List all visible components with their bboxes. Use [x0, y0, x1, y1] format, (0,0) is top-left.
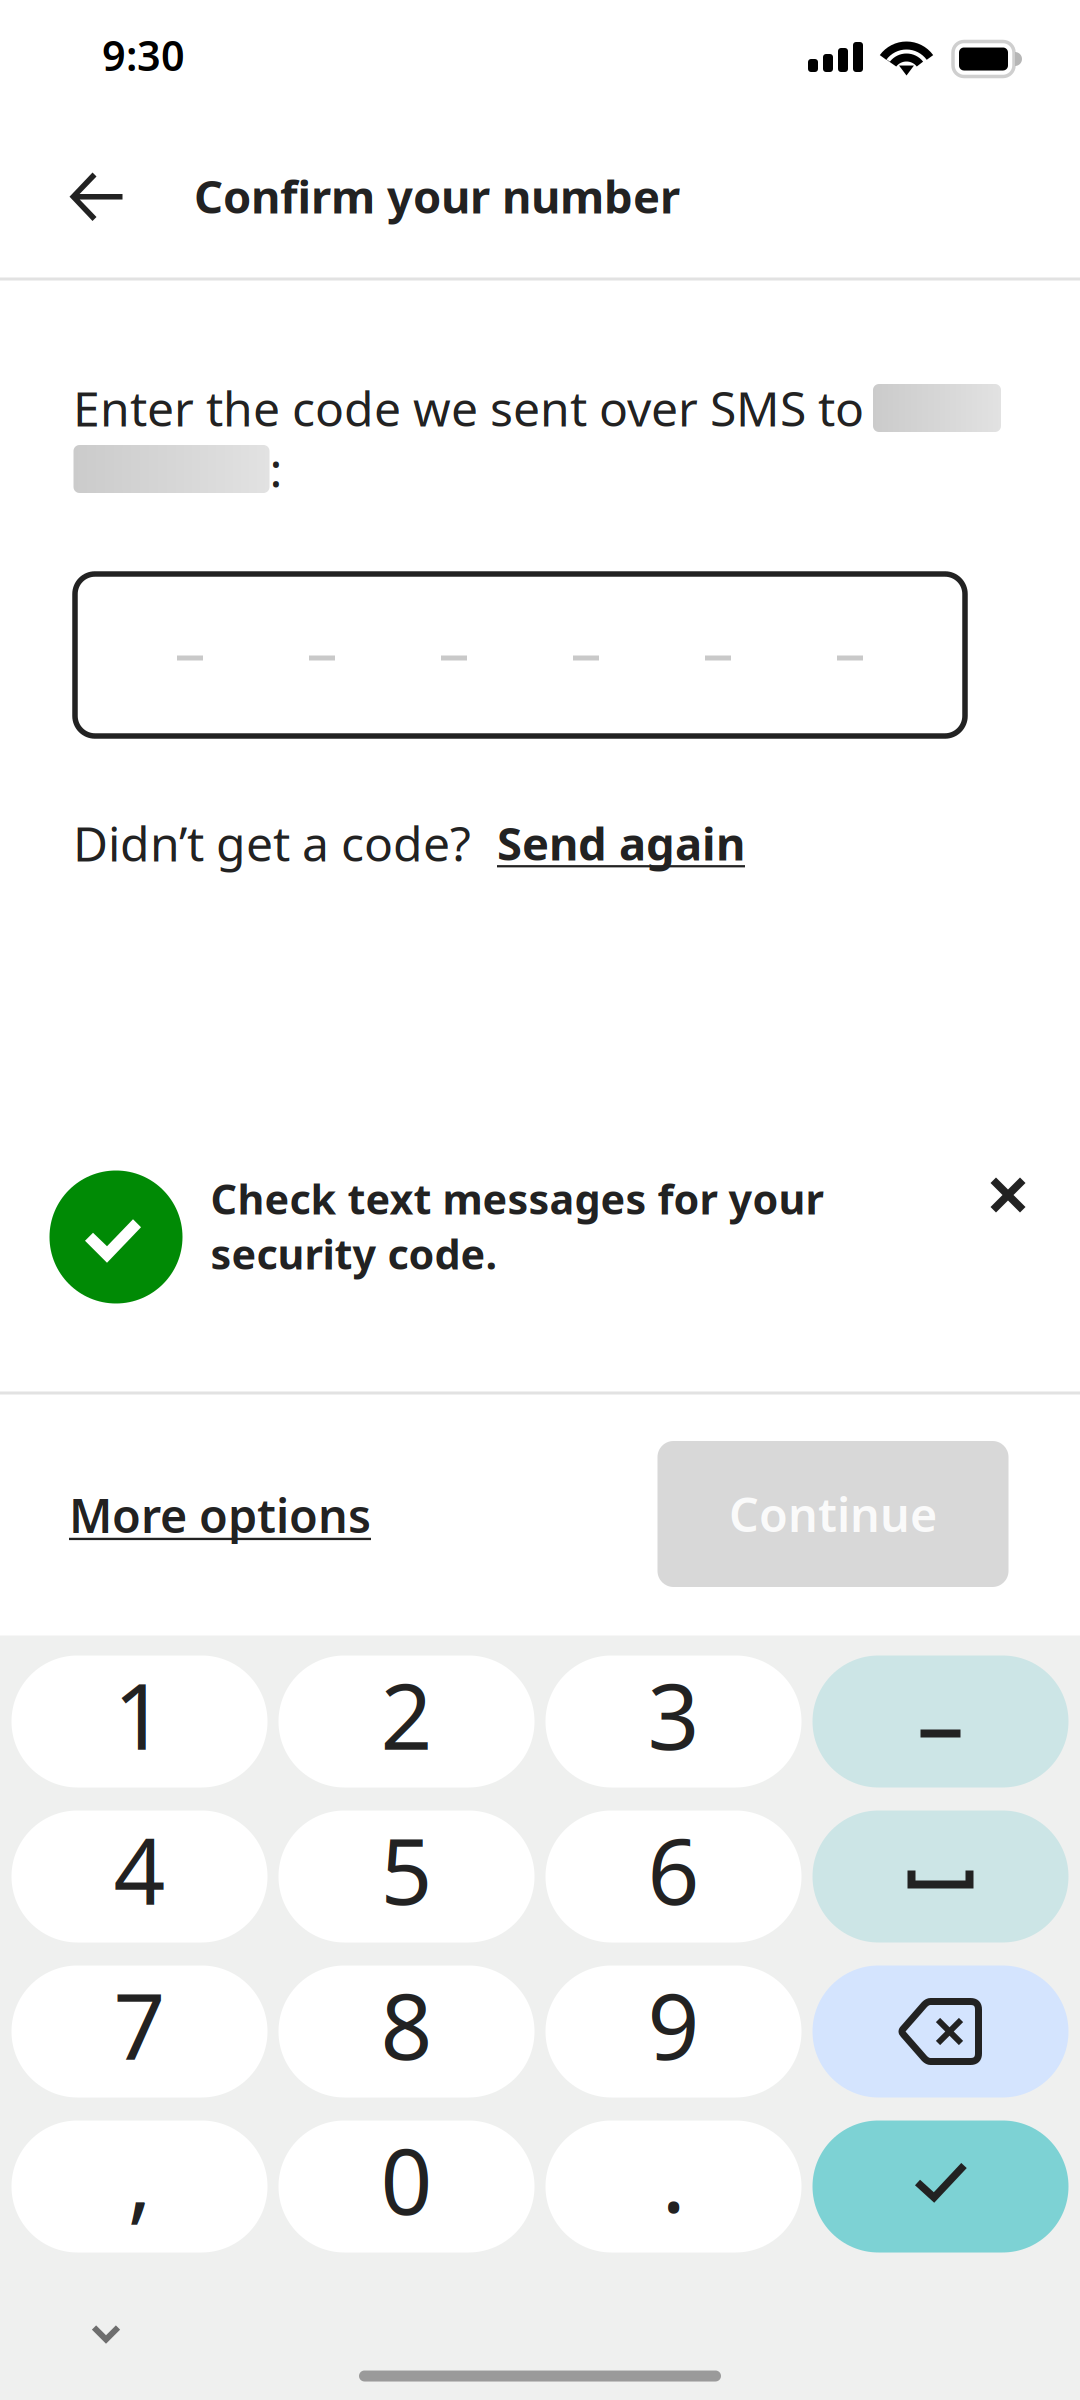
staticText: 9 [647, 1964, 699, 2085]
button[interactable]: 7 [11, 1965, 267, 2097]
button[interactable]: Space [812, 1810, 1068, 1942]
staticText: , [127, 2117, 151, 2238]
staticText: 1 [113, 1654, 165, 1775]
button[interactable]: 1 [11, 1655, 267, 1787]
button[interactable]: Continue [657, 1441, 1008, 1587]
button[interactable]: 2 [278, 1655, 534, 1787]
button[interactable]: , [11, 2120, 267, 2252]
button[interactable]: 0 [278, 2120, 534, 2252]
button[interactable]: 6 [545, 1810, 801, 1942]
staticText: Enter the code we sent over SMS to [73, 376, 864, 440]
staticText: 4 [113, 1809, 165, 1930]
staticText: 6 [647, 1809, 699, 1930]
staticText: 3 [647, 1654, 699, 1775]
staticText: Send again [497, 813, 745, 873]
button[interactable]: Enter [812, 2120, 1068, 2252]
staticText: 7 [113, 1964, 165, 2085]
staticText: Didn’t get a code? [73, 811, 471, 875]
button[interactable]: Dash [812, 1655, 1068, 1787]
button[interactable]: More options [69, 1484, 371, 1546]
button[interactable]: Dismiss [971, 1158, 1045, 1232]
staticText: Confirm your number [194, 166, 680, 226]
staticText: : [269, 437, 282, 501]
button[interactable]: 5 [278, 1810, 534, 1942]
staticText: 2 [380, 1654, 432, 1775]
button[interactable]: 4 [11, 1810, 267, 1942]
staticText: 8 [380, 1964, 432, 2085]
staticText: 0 [380, 2119, 432, 2240]
staticText: . [661, 2117, 685, 2238]
button[interactable]: Send again [497, 813, 745, 873]
button[interactable]: . [545, 2120, 801, 2252]
button[interactable]: Delete [812, 1965, 1068, 2097]
staticText: 9:30 [102, 28, 185, 82]
button[interactable]: Back [48, 147, 148, 247]
button[interactable]: 9 [545, 1965, 801, 2097]
button[interactable]: Hide keyboard [58, 2296, 154, 2370]
staticText: Check text messages for your security co… [210, 1171, 823, 1281]
staticText: More options [69, 1484, 371, 1546]
button[interactable]: 8 [278, 1965, 534, 2097]
staticText: Continue [729, 1483, 937, 1545]
staticText: 5 [380, 1809, 432, 1930]
button[interactable]: 3 [545, 1655, 801, 1787]
